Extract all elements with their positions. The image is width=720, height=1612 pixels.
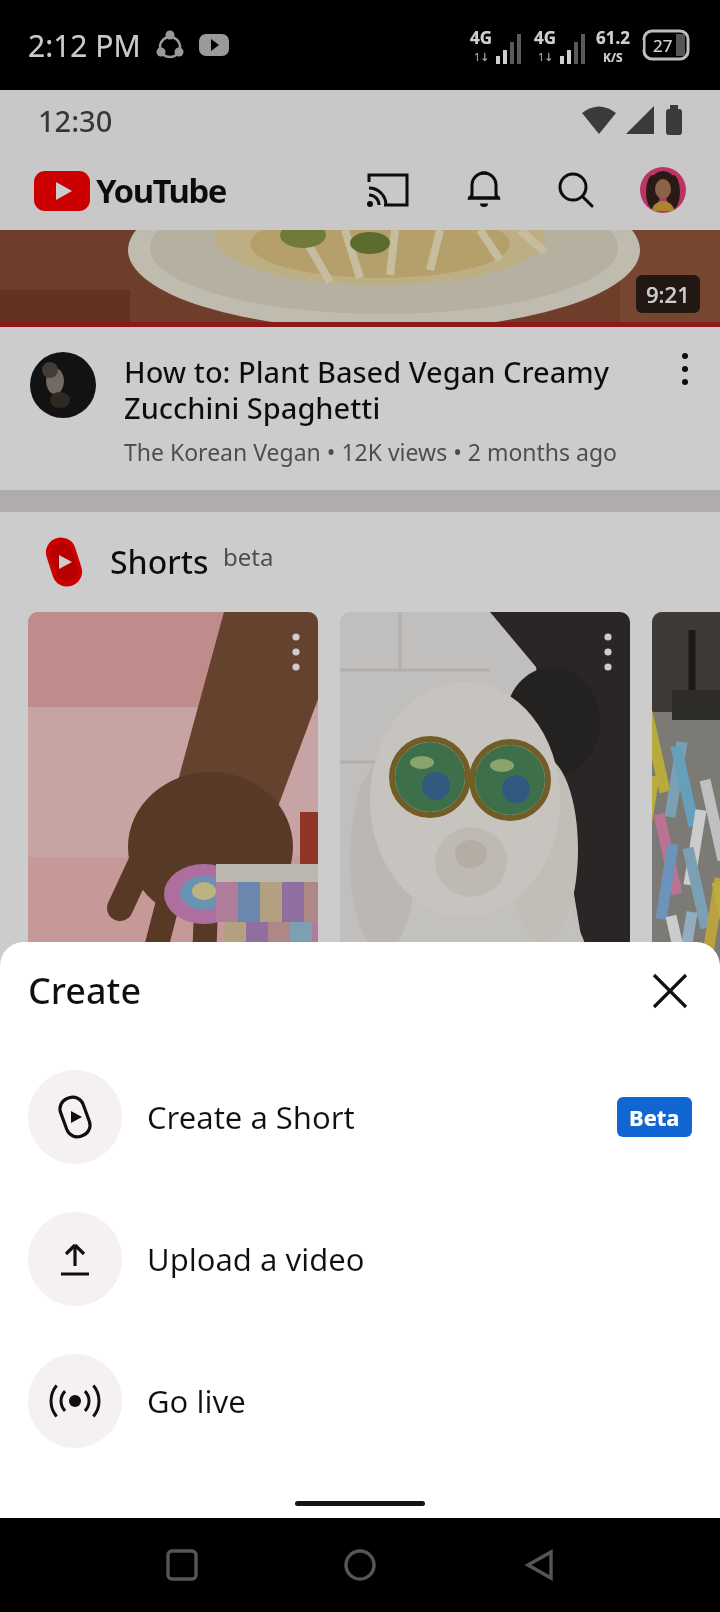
button[interactable]: Upload a video [0,1212,720,1306]
button[interactable] [462,168,506,212]
staticText: Beta [629,1102,680,1132]
staticText: Create [28,966,142,1015]
staticText: 9:21 [646,279,690,309]
staticText: 27 [653,34,673,57]
button[interactable]: YouTube [34,168,226,213]
button[interactable] [554,168,598,212]
staticText: 12:30 [38,101,113,140]
staticText: 61.2 [596,26,630,49]
button[interactable] [640,167,686,213]
button[interactable] [330,1535,390,1595]
button[interactable] [28,612,318,1612]
staticText: How to: Plant Based Vegan Creamy Zucchin… [124,352,610,428]
staticText: 4G [534,26,557,49]
button[interactable]: Go live [0,1354,720,1448]
button[interactable] [662,352,708,398]
staticText: beta [223,540,274,573]
staticText: 4G [470,26,493,49]
button[interactable] [366,168,410,212]
staticText: Go live [147,1380,246,1422]
button[interactable]: How to: Plant Based Vegan Creamy Zucchin… [0,327,720,490]
button[interactable] [508,1535,568,1595]
button[interactable] [646,967,694,1015]
staticText: Create a Short [147,1096,355,1138]
staticText: K/S [603,49,623,65]
staticText: YouTube [96,168,226,213]
staticText: The Korean Vegan • 12K views • 2 months … [124,436,618,467]
staticText: 1↓ [474,49,490,64]
staticText: Shorts [110,540,209,584]
button[interactable]: 9:21 [0,230,720,327]
button[interactable]: Create a Short [0,1070,720,1164]
button[interactable] [152,1535,212,1595]
staticText: 2:12 PM [28,25,141,66]
button[interactable] [652,612,720,1612]
button[interactable] [340,612,630,1612]
staticText: 1↓ [538,49,554,64]
staticText: Upload a video [147,1238,365,1280]
